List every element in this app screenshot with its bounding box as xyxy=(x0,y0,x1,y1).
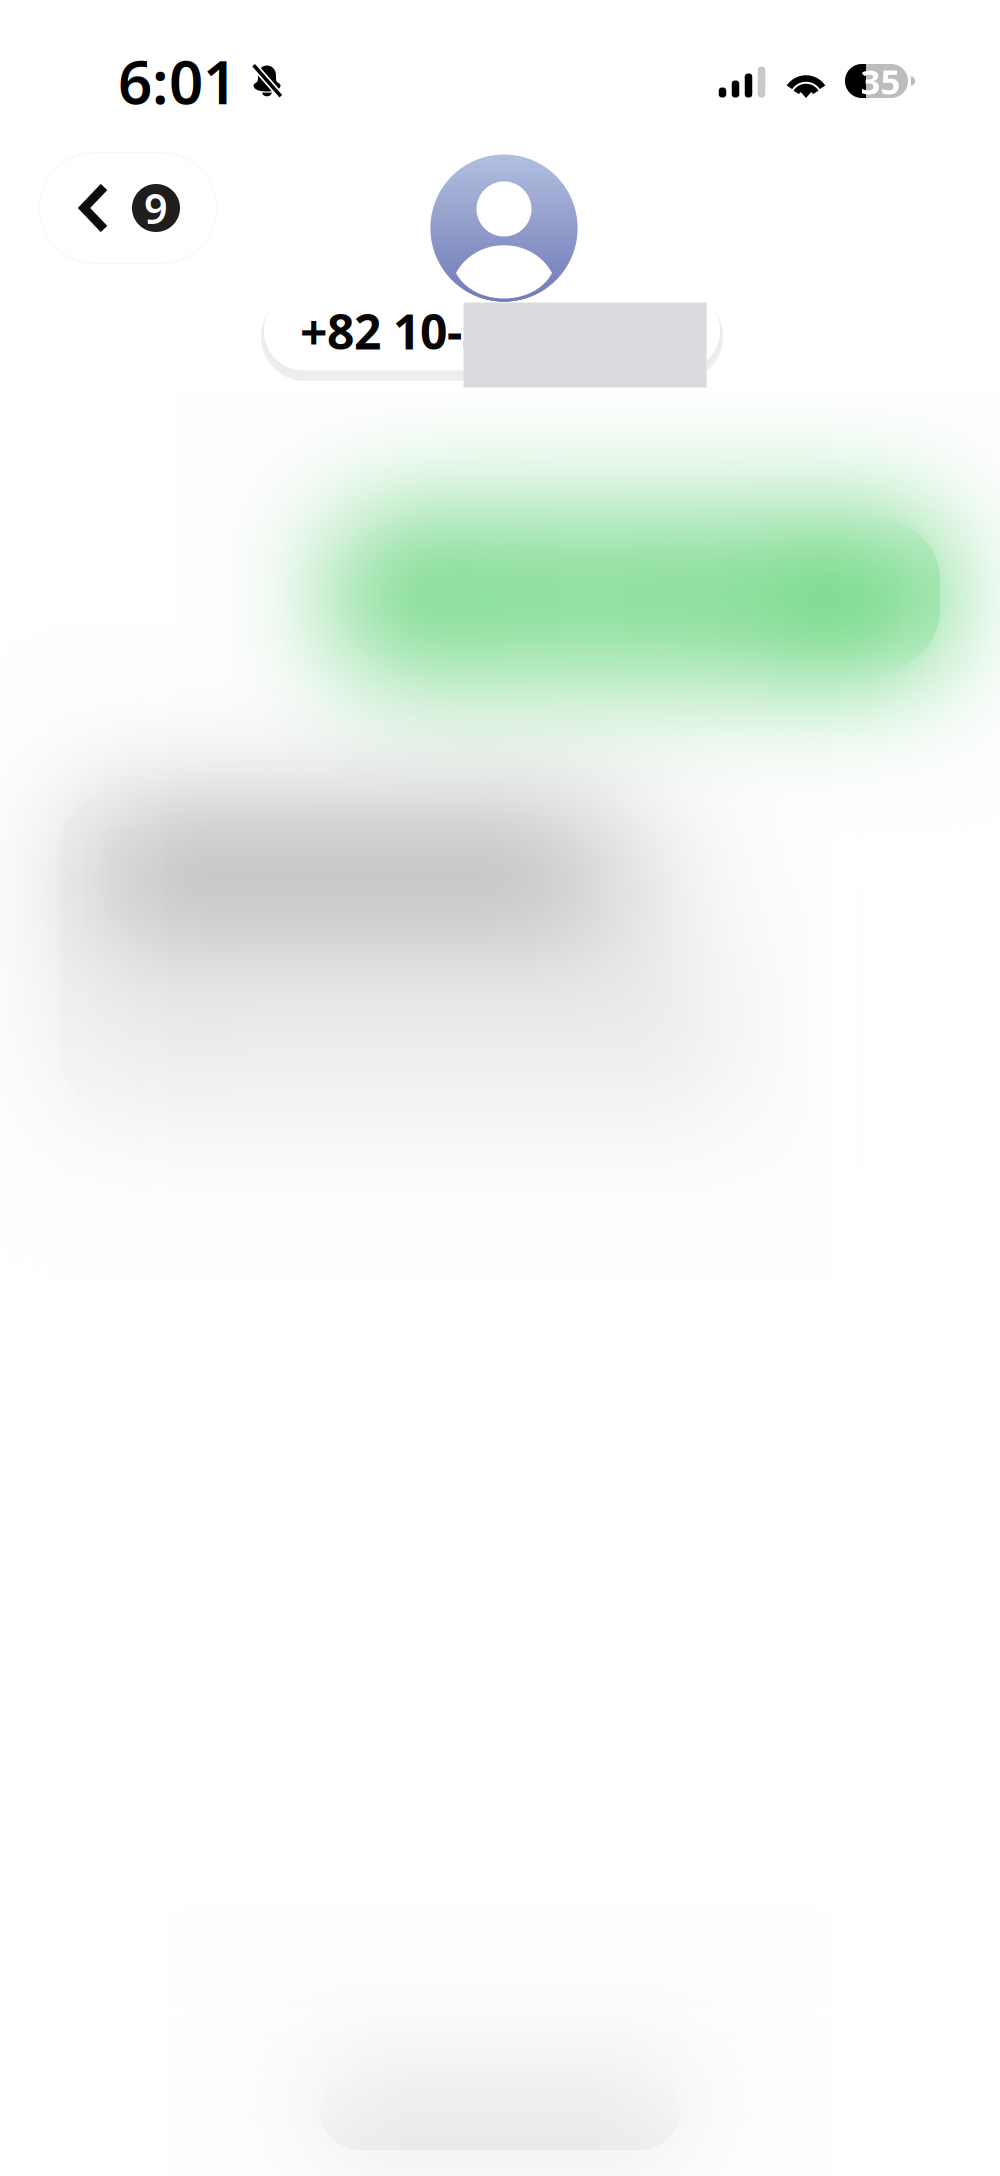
staticText: +82 10-3 xyxy=(300,299,489,363)
staticText: 35 xyxy=(860,58,900,104)
staticText: 6:01 xyxy=(118,41,237,121)
staticText: 9 xyxy=(144,181,168,235)
button[interactable]: Back, 9 unread conversations xyxy=(39,152,217,264)
